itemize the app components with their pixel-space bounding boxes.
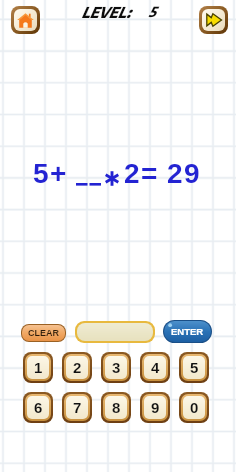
staticText: 4 — [151, 359, 160, 376]
staticText: : — [126, 3, 131, 22]
staticText: + — [50, 158, 67, 189]
staticText: 6 — [34, 399, 43, 416]
button[interactable]: 4 — [144, 356, 166, 379]
button[interactable]: 9 — [144, 396, 166, 419]
button[interactable]: 3 — [105, 356, 127, 379]
button[interactable]: CLEAR — [22, 325, 65, 341]
staticText: 5 — [148, 3, 156, 21]
button[interactable]: Home — [14, 9, 37, 31]
button[interactable]: ENTER — [164, 321, 211, 342]
button[interactable]: 6 — [27, 396, 49, 419]
staticText: 8 — [112, 399, 121, 416]
button[interactable]: 1 — [27, 356, 49, 379]
staticText: 5 — [190, 359, 199, 376]
staticText: 1 — [34, 359, 43, 376]
staticText: 2 — [73, 359, 82, 376]
staticText: = — [141, 158, 158, 189]
staticText: 0 — [190, 399, 199, 416]
staticText: 3 — [112, 359, 121, 376]
staticText: CLEAR — [28, 328, 59, 338]
staticText: 2 — [124, 158, 140, 189]
button[interactable] — [77, 323, 153, 341]
staticText: 5 — [33, 158, 49, 189]
button[interactable]: Next level — [202, 9, 225, 31]
button[interactable]: 0 — [183, 396, 205, 419]
staticText: 9 — [184, 158, 200, 189]
button[interactable]: 2 — [66, 356, 88, 379]
staticText: ENTER — [171, 326, 204, 337]
button[interactable]: 8 — [105, 396, 127, 419]
staticText: LEVEL — [81, 3, 126, 22]
staticText: 9 — [151, 399, 160, 416]
button[interactable]: 5 — [183, 356, 205, 379]
staticText: 7 — [73, 399, 82, 416]
staticText: 2 — [167, 158, 183, 189]
button[interactable]: 7 — [66, 396, 88, 419]
